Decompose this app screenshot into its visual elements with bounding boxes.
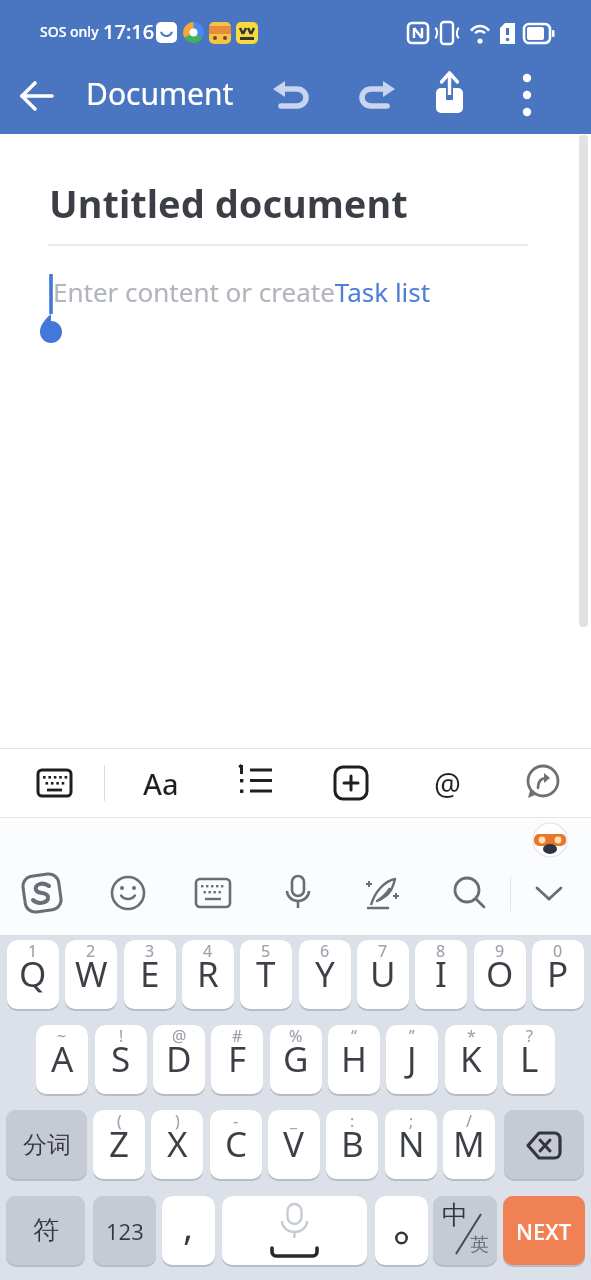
staticText: SOS only (40, 22, 99, 41)
button[interactable]: 4 (182, 940, 234, 1009)
button[interactable]: Aa (135, 758, 187, 808)
staticText: B (341, 1120, 364, 1168)
button[interactable]: 0 (532, 940, 584, 1009)
staticText: _ (290, 1110, 298, 1132)
button[interactable]: / (443, 1110, 495, 1179)
button[interactable]: _ (268, 1110, 320, 1179)
staticText: W (75, 950, 108, 998)
button[interactable]: 8 (415, 940, 467, 1009)
button[interactable]: ! (95, 1025, 147, 1094)
button[interactable]: ; (385, 1110, 437, 1179)
staticText: J (407, 1035, 417, 1083)
button[interactable]: 中 (433, 1196, 497, 1265)
button[interactable] (278, 873, 318, 913)
button[interactable] (14, 74, 58, 118)
staticText: Q (19, 950, 47, 998)
staticText: 中 (442, 1199, 468, 1232)
button[interactable]: “ (328, 1025, 380, 1094)
button[interactable] (193, 873, 233, 913)
staticText: O (486, 950, 514, 998)
button[interactable]: : (326, 1110, 378, 1179)
button[interactable] (22, 873, 62, 913)
button[interactable] (272, 72, 320, 120)
button[interactable] (222, 1196, 367, 1265)
staticText: @ (434, 763, 461, 804)
staticText: ? (526, 1025, 533, 1047)
button[interactable] (33, 761, 77, 805)
staticText: @ (172, 1025, 187, 1047)
staticText: ( (117, 1110, 122, 1132)
staticText: 英 (470, 1233, 489, 1257)
staticText: 符 (33, 1214, 59, 1247)
staticText: 1 (28, 940, 38, 962)
button[interactable] (348, 72, 396, 120)
staticText: D (166, 1035, 192, 1083)
button[interactable]: 123 (93, 1196, 156, 1265)
button[interactable]: % (270, 1025, 322, 1094)
button[interactable]: 2 (65, 940, 117, 1009)
staticText: G (283, 1035, 309, 1083)
staticText: 123 (106, 1216, 144, 1246)
button[interactable]: 5 (240, 940, 292, 1009)
button[interactable]: @ (153, 1025, 205, 1094)
button[interactable]: 1 (7, 940, 59, 1009)
staticText: H (341, 1035, 367, 1083)
button[interactable]: * (445, 1025, 497, 1094)
staticText: V (283, 1120, 305, 1168)
button[interactable]: 6 (299, 940, 351, 1009)
button[interactable]: ~ (36, 1025, 88, 1094)
button[interactable] (529, 873, 569, 913)
button[interactable]: 9 (474, 940, 526, 1009)
staticText: Aa (143, 764, 179, 803)
staticText: Z (109, 1120, 130, 1168)
staticText: S (111, 1035, 131, 1083)
button[interactable]: 符 (6, 1196, 85, 1265)
staticText: T (256, 950, 276, 998)
staticText: ! (119, 1025, 124, 1047)
staticText: 7 (378, 940, 388, 962)
button[interactable] (505, 72, 549, 116)
staticText: A (51, 1035, 74, 1083)
staticText: “ (351, 1025, 357, 1047)
staticText: Untitled document (49, 177, 408, 229)
button[interactable]: 分词 (6, 1110, 87, 1179)
button[interactable] (235, 761, 279, 805)
button[interactable]: @ (423, 758, 471, 808)
button[interactable]: ? (503, 1025, 555, 1094)
staticText: 4 (203, 940, 213, 962)
button[interactable] (363, 873, 403, 913)
staticText: U (370, 950, 396, 998)
staticText: N (398, 1120, 425, 1168)
button[interactable]: - (210, 1110, 262, 1179)
staticText: 17:16 (103, 18, 155, 45)
button[interactable] (504, 1110, 584, 1179)
staticText: / (466, 1110, 472, 1132)
button[interactable] (449, 873, 489, 913)
button[interactable] (427, 62, 473, 108)
staticText: K (460, 1035, 482, 1083)
button[interactable]: ” (386, 1025, 438, 1094)
staticText: ~ (57, 1025, 67, 1047)
button[interactable] (520, 761, 564, 805)
button[interactable]: # (211, 1025, 263, 1094)
staticText: X (167, 1120, 188, 1168)
button[interactable]: 7 (357, 940, 409, 1009)
staticText: % (289, 1025, 303, 1047)
button[interactable]: , (162, 1196, 215, 1265)
button[interactable]: ) (151, 1110, 203, 1179)
staticText: , (183, 1199, 194, 1251)
button[interactable]: ( (93, 1110, 145, 1179)
button[interactable]: Enter content or createTask list (53, 274, 431, 309)
staticText: E (140, 950, 160, 998)
staticText: : (350, 1110, 355, 1132)
staticText: - (233, 1110, 239, 1132)
staticText: L (520, 1035, 539, 1083)
staticText: C (225, 1120, 248, 1168)
button[interactable]: 3 (124, 940, 176, 1009)
staticText: ) (175, 1110, 180, 1132)
button[interactable] (375, 1196, 428, 1265)
button[interactable] (329, 761, 373, 805)
button[interactable] (108, 873, 148, 913)
staticText: 8 (436, 940, 446, 962)
button[interactable]: NEXT (503, 1196, 585, 1265)
